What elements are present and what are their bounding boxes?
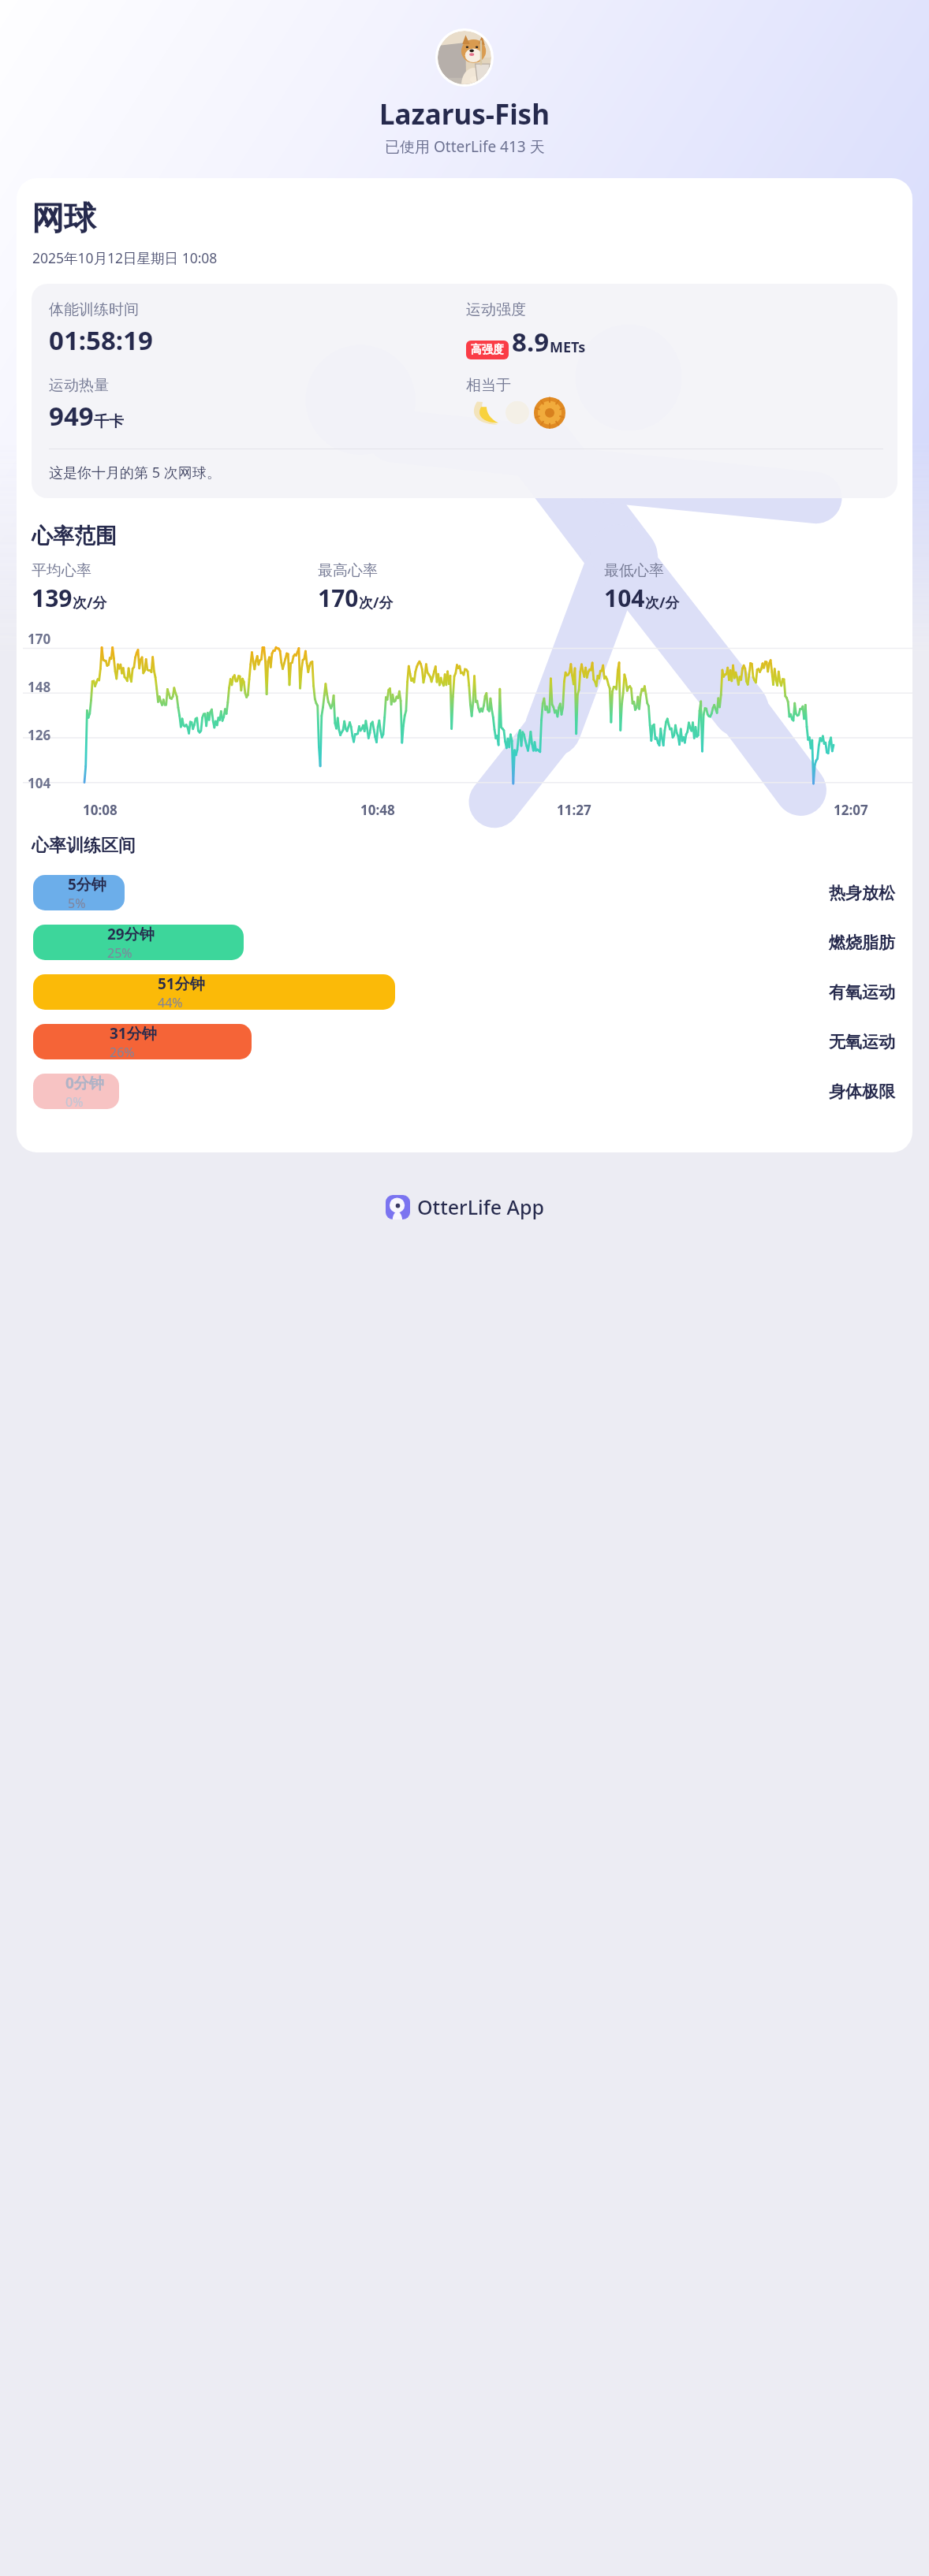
staticText: 139	[32, 582, 73, 614]
staticText: 网球	[32, 199, 96, 240]
button[interactable]: 29分钟	[17, 918, 912, 967]
staticText: 高强度	[471, 343, 504, 357]
staticText: 31分钟	[110, 1023, 157, 1044]
staticText: 次/分	[359, 593, 394, 612]
staticText: 次/分	[73, 593, 107, 612]
staticText: 心率训练区间	[32, 835, 136, 857]
button[interactable]: 0分钟	[17, 1067, 912, 1116]
staticText: 0%	[65, 1093, 84, 1111]
staticText: 44%	[158, 994, 183, 1011]
staticText: 热身放松	[829, 883, 895, 903]
staticText: 千卡	[94, 412, 124, 431]
staticText: 这是你十月的第 5 次网球。	[49, 463, 221, 482]
button[interactable]: Profile photo	[438, 31, 491, 84]
staticText: 运动强度	[466, 300, 526, 319]
button[interactable]: OtterLife App	[379, 1189, 550, 1225]
staticText: 最低心率	[604, 561, 664, 580]
staticText: 燃烧脂肪	[829, 932, 895, 953]
staticText: 25%	[107, 944, 132, 962]
staticText: 最高心率	[318, 561, 378, 580]
staticText: 170	[318, 582, 359, 614]
button[interactable]: 51分钟	[17, 967, 912, 1017]
staticText: 170	[28, 630, 51, 648]
staticText: 01:58:19	[49, 322, 153, 358]
staticText: 有氧运动	[829, 982, 895, 1003]
staticText: 无氧运动	[829, 1032, 895, 1052]
staticText: 身体极限	[829, 1081, 895, 1102]
staticText: 148	[28, 678, 51, 696]
staticText: 10:08	[83, 801, 118, 819]
staticText: 相当于	[466, 376, 511, 395]
staticText: 126	[28, 726, 51, 744]
staticText: 12:07	[834, 801, 868, 819]
staticText: 次/分	[645, 593, 680, 612]
staticText: 26%	[110, 1044, 135, 1061]
staticText: 5分钟	[68, 874, 106, 895]
button[interactable]: 31分钟	[17, 1017, 912, 1067]
staticText: 104	[28, 774, 51, 792]
staticText: 10:48	[360, 801, 395, 819]
staticText: 体能训练时间	[49, 300, 139, 319]
staticText: 51分钟	[158, 973, 205, 994]
staticText: OtterLife App	[417, 1193, 544, 1220]
staticText: 运动热量	[49, 376, 109, 395]
staticText: 104	[604, 582, 645, 614]
staticText: 8.9	[512, 324, 550, 359]
button[interactable]: 5分钟	[17, 868, 912, 918]
staticText: 2025年10月12日星期日 10:08	[32, 248, 218, 267]
staticText: METs	[550, 337, 586, 357]
staticText: 29分钟	[107, 924, 155, 944]
staticText: 949	[49, 398, 94, 434]
staticText: Lazarus-Fish	[379, 95, 550, 133]
staticText: 5%	[68, 895, 86, 912]
staticText: 心率范围	[32, 523, 117, 549]
staticText: 0分钟	[65, 1073, 104, 1093]
staticText: 已使用 OtterLife 413 天	[385, 136, 545, 157]
staticText: 11:27	[557, 801, 591, 819]
staticText: 平均心率	[32, 561, 91, 580]
